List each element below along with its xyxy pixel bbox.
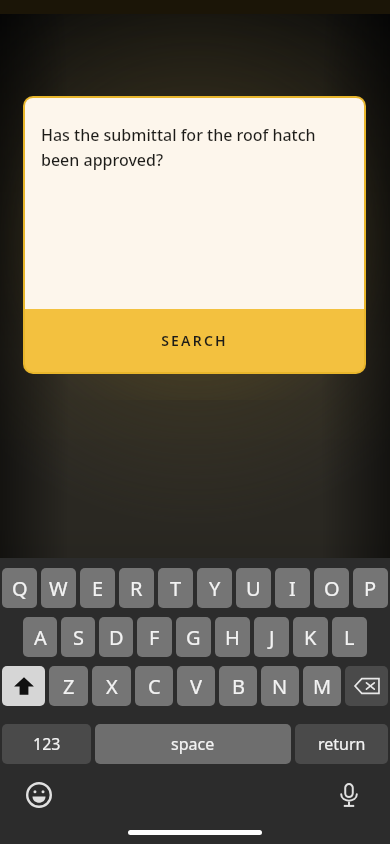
- staticText: T: [170, 575, 182, 602]
- staticText: B: [232, 673, 245, 700]
- button[interactable]: T: [158, 568, 193, 608]
- button[interactable]: W: [41, 568, 76, 608]
- staticText: M: [313, 673, 332, 700]
- staticText: E: [92, 575, 104, 602]
- staticText: O: [324, 575, 340, 602]
- button[interactable]: return: [295, 724, 388, 764]
- staticText: Q: [12, 575, 28, 602]
- button[interactable]: C: [135, 666, 173, 706]
- button[interactable]: O: [314, 568, 349, 608]
- button[interactable]: R: [119, 568, 154, 608]
- staticText: H: [225, 624, 240, 651]
- staticText: G: [186, 624, 201, 651]
- button[interactable]: A: [23, 617, 57, 657]
- button[interactable]: U: [236, 568, 271, 608]
- button[interactable]: 123: [2, 724, 91, 764]
- staticText: D: [109, 624, 124, 651]
- staticText: V: [190, 673, 202, 700]
- staticText: U: [246, 575, 261, 602]
- staticText: N: [272, 673, 288, 700]
- button[interactable]: SEARCH: [25, 309, 364, 372]
- button[interactable]: Z: [49, 666, 88, 706]
- staticText: Y: [209, 575, 221, 602]
- button[interactable]: M: [303, 666, 341, 706]
- button[interactable]: J: [254, 617, 289, 657]
- staticText: W: [49, 575, 68, 602]
- button[interactable]: V: [177, 666, 215, 706]
- staticText: C: [148, 673, 161, 700]
- button[interactable]: G: [176, 617, 211, 657]
- staticText: R: [130, 575, 143, 602]
- staticText: SEARCH: [161, 331, 228, 350]
- button[interactable]: D: [99, 617, 133, 657]
- button[interactable]: Q: [2, 568, 37, 608]
- staticText: 123: [33, 733, 61, 755]
- button[interactable]: N: [261, 666, 299, 706]
- button[interactable]: B: [219, 666, 257, 706]
- staticText: P: [364, 575, 377, 602]
- staticText: K: [304, 624, 317, 651]
- button[interactable]: Backspace: [345, 666, 388, 706]
- staticText: Has the submittal for the roof hatch bee…: [41, 124, 348, 170]
- staticText: return: [318, 733, 366, 755]
- button[interactable]: Emoji: [22, 778, 56, 812]
- staticText: I: [289, 575, 296, 602]
- staticText: S: [73, 624, 84, 651]
- button[interactable]: Dictation: [332, 778, 366, 812]
- button[interactable]: Shift: [2, 666, 45, 706]
- staticText: Z: [63, 673, 75, 700]
- staticText: A: [34, 624, 47, 651]
- button[interactable]: E: [80, 568, 115, 608]
- button[interactable]: Y: [197, 568, 232, 608]
- staticText: F: [149, 624, 160, 651]
- staticText: space: [171, 733, 215, 755]
- staticText: L: [344, 624, 355, 651]
- button[interactable]: space: [95, 724, 291, 764]
- button[interactable]: S: [61, 617, 95, 657]
- button[interactable]: K: [293, 617, 328, 657]
- button[interactable]: H: [215, 617, 250, 657]
- button[interactable]: P: [353, 568, 388, 608]
- staticText: X: [106, 673, 118, 700]
- staticText: J: [269, 624, 275, 651]
- button[interactable]: L: [332, 617, 367, 657]
- button[interactable]: F: [137, 617, 172, 657]
- button[interactable]: X: [92, 666, 131, 706]
- button[interactable]: I: [275, 568, 310, 608]
